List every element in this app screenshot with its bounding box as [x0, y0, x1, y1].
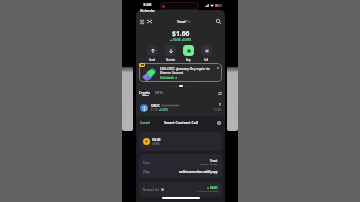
staticText: Sell — [204, 58, 209, 62]
staticText: Network fee — [143, 188, 160, 192]
button[interactable]: Crypto — [139, 90, 151, 96]
staticText: Trust — [177, 19, 186, 24]
button[interactable]: NFTs — [155, 90, 163, 94]
staticText: 0.0000474139 BNB — [198, 190, 218, 193]
button[interactable]: Dismiss — [216, 66, 220, 70]
button[interactable] — [139, 63, 222, 82]
staticText: $1.66 — [172, 29, 190, 38]
button[interactable]: Help — [216, 120, 222, 126]
staticText: From — [143, 161, 150, 165]
button[interactable]: Cancel — [140, 121, 150, 125]
staticText: Smart Contract Call — [164, 120, 198, 125]
staticText: 0 BNB — [152, 142, 160, 146]
staticText: 3:08 — [143, 2, 152, 8]
staticText: Send — [149, 58, 156, 62]
button[interactable]: Swap — [145, 17, 154, 26]
button[interactable]: Receive — [165, 45, 176, 62]
staticText: DApp — [143, 170, 151, 174]
staticText: Receive — [166, 58, 176, 62]
staticText: Crypto — [139, 90, 151, 94]
staticText: Full details — [160, 76, 174, 80]
staticText: Trust — [210, 159, 218, 163]
staticText: Buy — [186, 58, 191, 62]
staticText: 0x67C9...2a9a8e — [200, 163, 218, 166]
staticText: $0.00 — [152, 137, 161, 141]
staticText: +0.02% — [159, 108, 168, 112]
staticText: $1.00 — [151, 108, 158, 112]
button[interactable]: Manage tokens — [217, 90, 223, 96]
staticText: Wednesday — [140, 9, 155, 12]
staticText: 1 — [219, 103, 221, 107]
button[interactable]: Buy — [183, 45, 194, 62]
staticText: $0.00 +0.00% — [173, 38, 192, 42]
staticText: BNB Smart Chain — [162, 104, 179, 107]
staticText: USDC — [151, 103, 160, 107]
staticText: $20k USDC giveaway: Buy crypto via Binan… — [160, 67, 215, 75]
button[interactable]: Search — [214, 17, 223, 26]
button[interactable]: Scan QR code — [137, 17, 146, 26]
staticText: walletconnection.netlify.app — [179, 170, 218, 174]
button[interactable]: Fee info — [161, 188, 164, 191]
button[interactable]: USDC — [140, 102, 221, 113]
button[interactable]: Sell — [201, 45, 212, 62]
button[interactable]: Send — [147, 45, 158, 62]
staticText: $0.01 — [210, 186, 218, 190]
button[interactable]: Trust — [177, 19, 190, 24]
staticText: $1.00 — [214, 108, 221, 112]
